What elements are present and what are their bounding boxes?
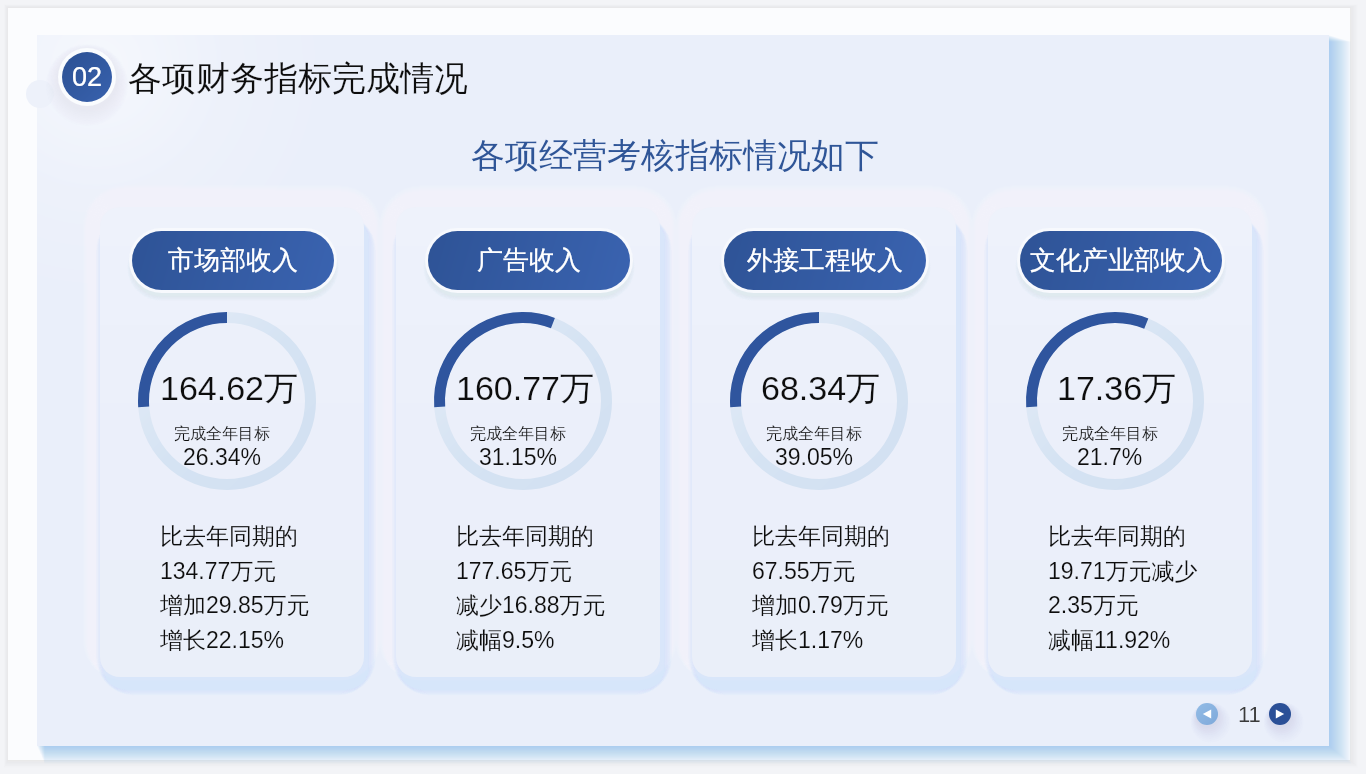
staticText: 21.7% — [1077, 444, 1143, 470]
staticText: 增长1.17% — [752, 626, 864, 655]
staticText: 比去年同期的 — [752, 522, 890, 551]
button[interactable]: 广告收入 — [396, 207, 660, 677]
button[interactable]: 外接工程收入 — [724, 231, 926, 290]
staticText: 完成全年目标 — [766, 424, 862, 444]
staticText: 外接工程收入 — [747, 244, 903, 277]
button[interactable]: 市场部收入 — [100, 207, 364, 677]
staticText: 164.62万 — [160, 367, 298, 410]
staticText: 26.34% — [183, 444, 262, 470]
button[interactable]: 外接工程收入 — [692, 207, 956, 677]
staticText: 减幅9.5% — [456, 626, 555, 655]
button[interactable]: Next slide — [1269, 703, 1291, 725]
staticText: 各项经营考核指标情况如下 — [471, 134, 879, 177]
staticText: 减少16.88万元 — [456, 591, 606, 620]
staticText: 完成全年目标 — [174, 424, 270, 444]
staticText: 比去年同期的 — [456, 522, 594, 551]
staticText: 67.55万元 — [752, 557, 856, 586]
staticText: 17.36万 — [1057, 367, 1177, 410]
staticText: 增加0.79万元 — [752, 591, 889, 620]
staticText: 完成全年目标 — [1062, 424, 1158, 444]
staticText: 文化产业部收入 — [1030, 244, 1212, 277]
staticText: 160.77万 — [456, 367, 594, 410]
staticText: 增长22.15% — [160, 626, 285, 655]
staticText: 减幅11.92% — [1048, 626, 1171, 655]
staticText: 39.05% — [775, 444, 854, 470]
staticText: 广告收入 — [477, 244, 581, 277]
button[interactable]: 广告收入 — [428, 231, 630, 290]
button[interactable]: 文化产业部收入 — [1020, 231, 1222, 290]
staticText: 11 — [1238, 702, 1261, 727]
staticText: 完成全年目标 — [470, 424, 566, 444]
staticText: 02 — [72, 62, 103, 92]
staticText: 各项财务指标完成情况 — [128, 57, 468, 100]
staticText: 31.15% — [479, 444, 558, 470]
staticText: 177.65万元 — [456, 557, 573, 586]
staticText: 市场部收入 — [168, 244, 298, 277]
button[interactable]: Previous slide — [1196, 703, 1218, 725]
staticText: 增加29.85万元 — [160, 591, 310, 620]
staticText: 比去年同期的 — [1048, 522, 1186, 551]
button[interactable]: 市场部收入 — [132, 231, 334, 290]
staticText: 比去年同期的 — [160, 522, 298, 551]
button[interactable]: 文化产业部收入 — [988, 207, 1252, 677]
staticText: 2.35万元 — [1048, 591, 1139, 620]
button[interactable]: Section 02 — [62, 52, 112, 102]
staticText: 68.34万 — [761, 367, 881, 410]
staticText: 19.71万元减少 — [1048, 557, 1198, 586]
staticText: 134.77万元 — [160, 557, 277, 586]
